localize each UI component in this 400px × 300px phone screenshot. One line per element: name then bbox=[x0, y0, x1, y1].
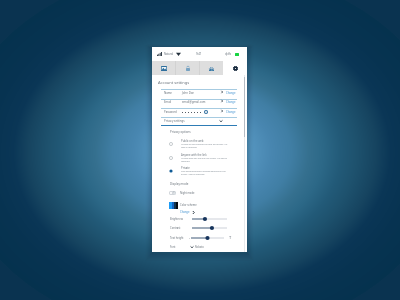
staticText: Privacy options bbox=[170, 130, 191, 134]
staticText: email@gmail.com bbox=[182, 100, 206, 104]
button[interactable] bbox=[192, 225, 227, 231]
button[interactable]: Anyone with the link bbox=[167, 153, 239, 167]
staticText: Color scheme bbox=[180, 203, 197, 207]
button[interactable]: Font bbox=[167, 244, 239, 250]
button[interactable]: People bbox=[200, 61, 223, 75]
staticText: John Doe bbox=[182, 91, 194, 95]
staticText: Change bbox=[180, 210, 190, 214]
staticText: Text height bbox=[170, 236, 184, 240]
button[interactable]: Public on the web bbox=[167, 139, 239, 153]
staticText: Display mode bbox=[170, 182, 189, 186]
staticText: Account settings bbox=[158, 80, 190, 85]
staticText: Contrast bbox=[170, 226, 181, 230]
button[interactable]: Privacy bbox=[176, 61, 199, 75]
button[interactable]: Privacy settings bbox=[161, 117, 237, 125]
staticText: T bbox=[189, 237, 191, 240]
staticText: djdfs bbox=[225, 52, 231, 56]
staticText: Change bbox=[226, 91, 236, 95]
button[interactable]: Email bbox=[161, 98, 237, 106]
button[interactable] bbox=[192, 216, 227, 222]
button[interactable]: Photos bbox=[152, 61, 175, 75]
staticText: Change bbox=[226, 100, 236, 104]
button[interactable]: Night mode bbox=[167, 189, 207, 197]
button[interactable]: Private bbox=[167, 166, 239, 180]
staticText: Email bbox=[164, 100, 172, 104]
staticText: Anyone who has the link can access. No s… bbox=[181, 157, 231, 163]
button[interactable]: Color scheme bbox=[167, 201, 212, 209]
button[interactable]: Name bbox=[161, 89, 237, 97]
staticText: Anyone on the internet can find and acce… bbox=[181, 143, 231, 149]
staticText: Public on the web bbox=[181, 139, 204, 143]
staticText: Font bbox=[170, 245, 176, 249]
staticText: Privacy settings bbox=[164, 119, 185, 123]
button[interactable] bbox=[191, 235, 224, 241]
staticText: Roboto bbox=[195, 245, 204, 249]
button[interactable]: Password bbox=[161, 108, 237, 116]
staticText: 9:41 bbox=[196, 52, 202, 56]
staticText: Password bbox=[164, 110, 177, 114]
button[interactable]: Settings bbox=[223, 61, 247, 75]
staticText: Brightness bbox=[170, 217, 184, 221]
staticText: Only people explicitly granted permissio… bbox=[181, 170, 231, 176]
staticText: Natural bbox=[164, 52, 174, 56]
staticText: Anyone with the link bbox=[181, 153, 207, 157]
staticText: Night mode bbox=[180, 191, 195, 195]
staticText: Change bbox=[226, 110, 236, 114]
staticText: T bbox=[229, 235, 232, 240]
staticText: Name bbox=[164, 91, 172, 95]
staticText: Private bbox=[181, 166, 190, 170]
button[interactable]: Change bbox=[178, 209, 200, 215]
